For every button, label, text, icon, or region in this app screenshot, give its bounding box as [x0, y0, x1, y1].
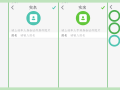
staticText: 请输入姓名	[70, 34, 85, 37]
staticText: 姓名	[61, 34, 67, 37]
button[interactable]: 姓名	[59, 32, 107, 38]
button[interactable]: Back	[59, 4, 67, 10]
button[interactable]: Confirm	[49, 4, 58, 10]
staticText: 姓名	[11, 34, 17, 37]
button[interactable]: Back	[9, 4, 17, 10]
staticText: ···	[101, 0, 104, 4]
staticText: 请上传本人手持身份证件照片	[61, 29, 100, 32]
staticText: 9:41	[61, 0, 68, 4]
staticText: 请上传本人身份证件原件照片	[11, 29, 50, 32]
button[interactable]: Back	[108, 4, 114, 10]
staticText: 请输入姓名	[20, 34, 35, 37]
staticText: 9:41	[11, 0, 18, 4]
button[interactable]: Confirm	[98, 4, 107, 10]
staticText: ···	[52, 0, 55, 4]
staticText: 实名	[78, 5, 86, 10]
button[interactable]: 姓名	[9, 32, 58, 38]
staticText: 实名	[29, 5, 37, 10]
